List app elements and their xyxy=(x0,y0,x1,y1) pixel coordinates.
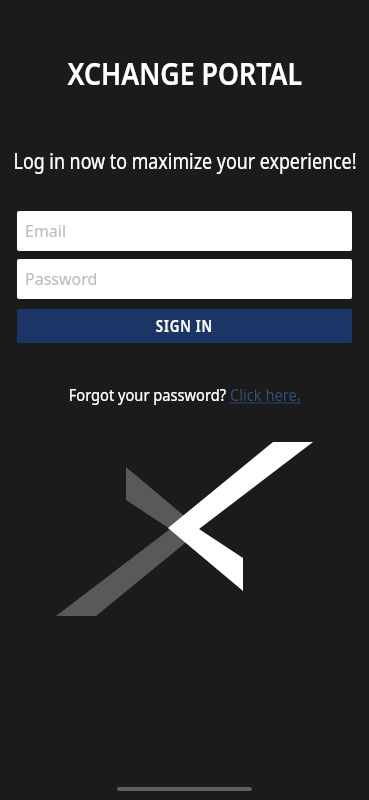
staticText: Email xyxy=(25,220,67,242)
staticText: XCHANGE PORTAL xyxy=(67,53,302,94)
button[interactable]: Password xyxy=(17,259,352,299)
staticText: SIGN IN xyxy=(156,315,213,337)
button[interactable]: Email xyxy=(17,211,352,251)
staticText: Log in now to maximize your experience! xyxy=(6,147,363,176)
button[interactable]: Forgot your password? Click here. xyxy=(58,384,312,406)
staticText: Forgot your password? Click here. xyxy=(69,384,301,406)
button[interactable]: SIGN IN xyxy=(17,309,352,343)
staticText: Password xyxy=(25,268,98,290)
